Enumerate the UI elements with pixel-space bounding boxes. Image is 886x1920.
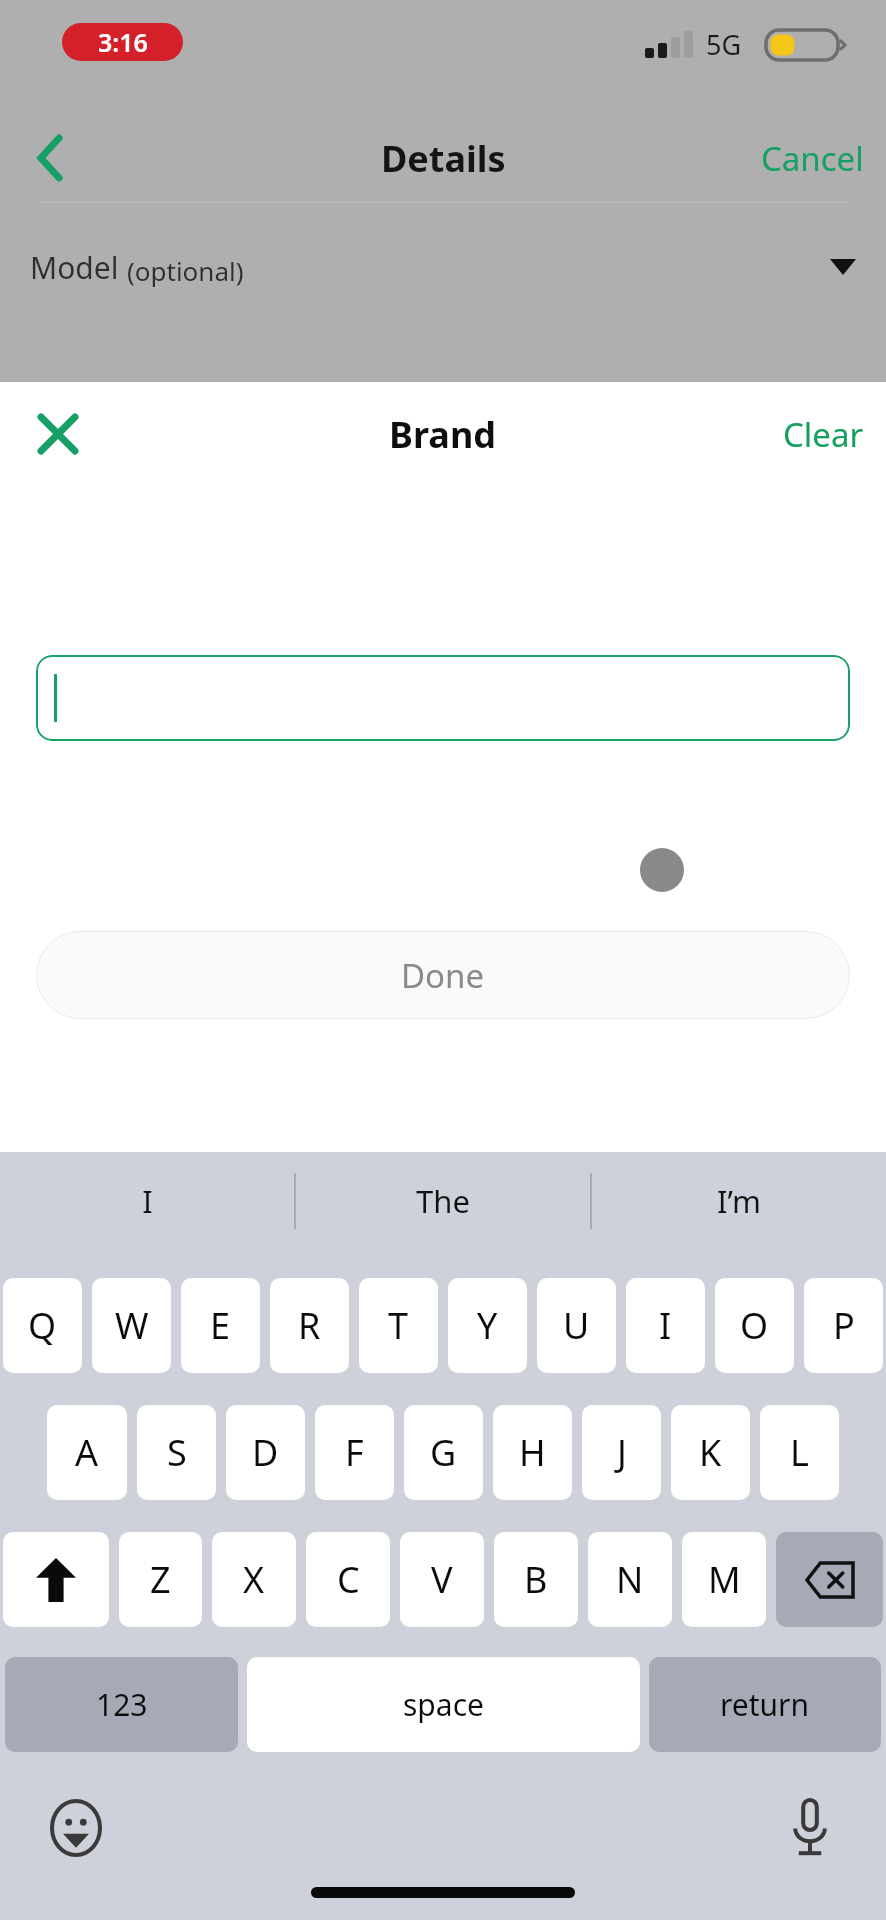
button[interactable]: E (181, 1278, 260, 1373)
staticText: V (431, 1555, 453, 1604)
staticText: F (345, 1428, 364, 1477)
staticText: K (699, 1428, 722, 1477)
button[interactable]: Y (448, 1278, 527, 1373)
button[interactable]: V (400, 1532, 484, 1627)
staticText: Details (381, 134, 506, 183)
button[interactable]: A (47, 1405, 127, 1500)
staticText: W (115, 1301, 149, 1350)
button[interactable]: Done (36, 931, 850, 1019)
staticText: C (337, 1555, 360, 1604)
staticText: I (142, 1180, 153, 1222)
staticText: Cancel (761, 136, 864, 181)
button[interactable]: S (137, 1405, 216, 1500)
button[interactable]: Dictation (778, 1796, 842, 1860)
button[interactable]: Backspace (776, 1532, 883, 1627)
staticText: I (659, 1301, 672, 1350)
button[interactable]: U (537, 1278, 616, 1373)
button[interactable]: P (804, 1278, 883, 1373)
button[interactable]: space (247, 1657, 640, 1752)
button[interactable]: D (226, 1405, 305, 1500)
staticText: U (563, 1301, 590, 1350)
button[interactable]: Back (18, 126, 82, 190)
staticText: S (167, 1428, 187, 1477)
staticText: 3:16 (98, 25, 148, 59)
staticText: Brand (389, 410, 497, 459)
staticText: Q (28, 1301, 57, 1350)
staticText: D (252, 1428, 279, 1477)
staticText: Z (150, 1555, 171, 1604)
staticText: Done (401, 953, 485, 998)
button[interactable]: I’m (592, 1152, 886, 1250)
button[interactable]: I (626, 1278, 705, 1373)
staticText: G (430, 1428, 457, 1477)
button[interactable]: Clear (783, 412, 864, 457)
staticText: L (790, 1428, 809, 1477)
button[interactable]: L (760, 1405, 839, 1500)
staticText: X (243, 1555, 265, 1604)
button[interactable]: G (404, 1405, 483, 1500)
button[interactable]: The (296, 1152, 590, 1250)
button[interactable] (36, 655, 850, 741)
staticText: return (720, 1684, 810, 1725)
staticText: J (617, 1428, 627, 1477)
staticText: (optional) (127, 253, 244, 288)
button[interactable]: I (0, 1152, 294, 1250)
button[interactable]: W (92, 1278, 171, 1373)
button[interactable]: C (306, 1532, 390, 1627)
button[interactable]: K (671, 1405, 750, 1500)
staticText: Clear (783, 412, 864, 457)
button[interactable]: Close (20, 396, 96, 472)
button[interactable]: M (682, 1532, 766, 1627)
staticText: 123 (96, 1684, 148, 1725)
staticText: 5G (706, 26, 742, 63)
button[interactable]: Model (0, 222, 886, 312)
staticText: A (75, 1428, 99, 1477)
staticText: M (708, 1555, 741, 1604)
staticText: space (403, 1684, 484, 1725)
button[interactable]: X (212, 1532, 296, 1627)
button[interactable]: Indicator (640, 848, 684, 892)
staticText: N (616, 1555, 644, 1604)
button[interactable]: 123 (5, 1657, 238, 1752)
staticText: O (740, 1301, 769, 1350)
staticText: H (519, 1428, 546, 1477)
staticText: T (388, 1301, 409, 1350)
button[interactable]: R (270, 1278, 349, 1373)
button[interactable]: F (315, 1405, 394, 1500)
button[interactable]: return (649, 1657, 881, 1752)
button[interactable]: J (582, 1405, 661, 1500)
button[interactable]: Emoji (44, 1796, 108, 1860)
staticText: The (416, 1180, 470, 1222)
staticText: B (524, 1555, 548, 1604)
staticText: Model (30, 247, 127, 288)
button[interactable]: N (588, 1532, 672, 1627)
staticText: R (298, 1301, 321, 1350)
button[interactable]: Z (119, 1532, 202, 1627)
button[interactable]: H (493, 1405, 572, 1500)
staticText: I’m (717, 1180, 761, 1222)
staticText: Y (477, 1301, 498, 1350)
button[interactable]: Shift (3, 1532, 109, 1627)
button[interactable]: Cancel (761, 136, 864, 181)
staticText: P (833, 1301, 855, 1350)
button[interactable]: T (359, 1278, 438, 1373)
button[interactable]: O (715, 1278, 794, 1373)
button[interactable]: Q (3, 1278, 82, 1373)
staticText: E (210, 1301, 231, 1350)
button[interactable]: B (494, 1532, 578, 1627)
